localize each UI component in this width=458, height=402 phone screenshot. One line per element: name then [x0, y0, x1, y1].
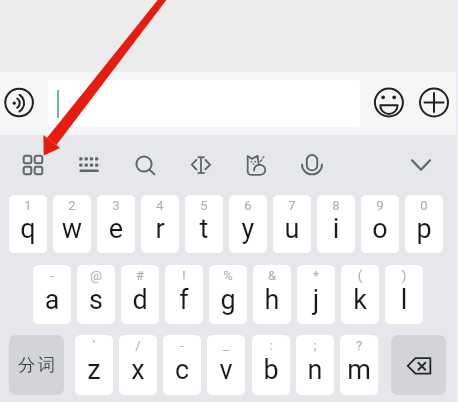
staticText: *	[297, 268, 335, 283]
button[interactable]: -	[33, 265, 71, 324]
staticText: e	[97, 213, 135, 245]
staticText: (	[341, 268, 379, 283]
staticText: 0	[405, 198, 443, 213]
button[interactable]: _	[207, 335, 245, 395]
staticText: 4	[141, 198, 179, 213]
staticText: g	[209, 284, 247, 316]
button[interactable]: )	[385, 265, 423, 324]
staticText: 6	[229, 198, 267, 213]
button[interactable]: #	[121, 265, 159, 324]
button[interactable]: (	[341, 265, 379, 324]
staticText: ;	[296, 338, 334, 353]
staticText: 5	[185, 198, 223, 213]
staticText: -	[163, 338, 201, 353]
staticText: ?	[340, 338, 378, 353]
staticText: z	[75, 354, 113, 386]
staticText: !	[165, 268, 203, 283]
staticText: x	[119, 354, 157, 386]
button[interactable]: 分词	[9, 335, 64, 395]
staticText: h	[253, 284, 291, 316]
button[interactable]: 9	[361, 195, 399, 253]
staticText: 分词	[17, 354, 56, 376]
button[interactable]: Stickers	[240, 148, 274, 182]
staticText: 8	[317, 198, 355, 213]
button[interactable]: '	[75, 335, 113, 395]
button[interactable]: !	[165, 265, 203, 324]
staticText: f	[165, 284, 203, 316]
staticText: d	[121, 284, 159, 316]
staticText: /	[119, 338, 157, 353]
button[interactable]: 5	[185, 195, 223, 253]
staticText: m	[340, 354, 378, 386]
button[interactable]: &	[253, 265, 291, 324]
button[interactable]: Keyboard modes	[16, 148, 50, 182]
staticText: #	[121, 268, 159, 283]
staticText: _	[207, 338, 245, 353]
staticText: y	[229, 213, 267, 245]
staticText: n	[296, 354, 334, 386]
button[interactable]: 3	[97, 195, 135, 253]
button[interactable]: ;	[296, 335, 334, 395]
staticText: l	[385, 284, 423, 316]
staticText: &	[253, 268, 291, 283]
button[interactable]: :	[252, 335, 290, 395]
button[interactable]: %	[209, 265, 247, 324]
staticText: %	[209, 268, 247, 283]
staticText: 2	[53, 198, 91, 213]
staticText: b	[252, 354, 290, 386]
button[interactable]: Emoji	[373, 87, 405, 119]
button[interactable]: 0	[405, 195, 443, 253]
staticText: 3	[97, 198, 135, 213]
staticText: t	[185, 213, 223, 245]
staticText: o	[361, 213, 399, 245]
button[interactable]: Collapse keyboard	[404, 148, 438, 182]
button[interactable]: 2	[53, 195, 91, 253]
staticText: r	[141, 213, 179, 245]
button[interactable]: Add	[418, 87, 450, 119]
button[interactable]: Voice input	[4, 87, 35, 118]
staticText: v	[207, 354, 245, 386]
button[interactable]: 1	[9, 195, 47, 253]
staticText: i	[317, 213, 355, 245]
staticText: s	[77, 284, 115, 316]
button[interactable]: Backspace	[391, 335, 446, 395]
button[interactable]: 6	[229, 195, 267, 253]
staticText: -	[33, 268, 71, 283]
staticText: '	[75, 338, 113, 353]
staticText: c	[163, 354, 201, 386]
button[interactable]: 8	[317, 195, 355, 253]
button[interactable]: Voice	[295, 148, 329, 182]
staticText: 9	[361, 198, 399, 213]
staticText: 7	[273, 198, 311, 213]
staticText: p	[405, 213, 443, 245]
button[interactable]	[48, 80, 360, 127]
button[interactable]: @	[77, 265, 115, 324]
button[interactable]: ?	[340, 335, 378, 395]
staticText: k	[341, 284, 379, 316]
staticText: 1	[9, 198, 47, 213]
button[interactable]: -	[163, 335, 201, 395]
staticText: j	[297, 284, 335, 316]
staticText: @	[77, 268, 115, 283]
staticText: q	[9, 213, 47, 245]
staticText: )	[385, 268, 423, 283]
button[interactable]: 7	[273, 195, 311, 253]
staticText: u	[273, 213, 311, 245]
button[interactable]: /	[119, 335, 157, 395]
staticText: w	[53, 213, 91, 245]
button[interactable]: Move cursor	[184, 148, 218, 182]
staticText: a	[33, 284, 71, 316]
button[interactable]: Search	[127, 147, 161, 181]
staticText: :	[252, 338, 290, 353]
button[interactable]: 4	[141, 195, 179, 253]
button[interactable]: Switch keyboard	[72, 148, 106, 182]
button[interactable]: *	[297, 265, 335, 324]
